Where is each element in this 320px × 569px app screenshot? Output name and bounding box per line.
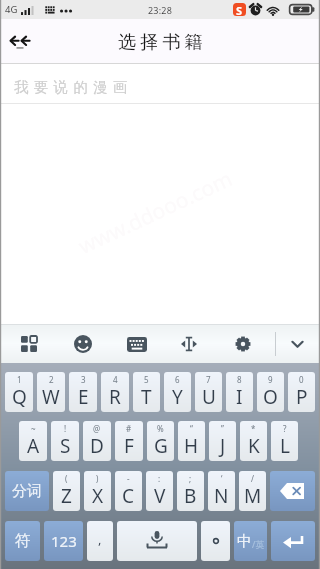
staticText: U xyxy=(202,384,216,410)
button[interactable]: 0 xyxy=(288,372,315,412)
button[interactable]: , xyxy=(87,521,113,561)
staticText: S xyxy=(60,433,71,459)
staticText: V xyxy=(154,483,166,509)
button[interactable]: 6 xyxy=(164,372,191,412)
staticText: ( xyxy=(65,473,68,484)
staticText: L xyxy=(280,433,290,459)
staticText: 8 xyxy=(237,374,242,385)
staticText: C xyxy=(122,483,135,509)
button[interactable]: 符 xyxy=(5,521,40,561)
staticText: 6 xyxy=(175,374,180,385)
staticText: ! xyxy=(64,423,67,434)
staticText: F xyxy=(124,433,134,459)
staticText: ~ xyxy=(31,423,36,434)
button[interactable]: / xyxy=(239,471,266,511)
button[interactable]: % xyxy=(147,421,174,461)
staticText: 1 xyxy=(17,374,22,385)
button[interactable]: ‘ xyxy=(208,471,235,511)
button[interactable]: ; xyxy=(177,471,204,511)
staticText: , xyxy=(98,530,102,548)
staticText: A xyxy=(27,433,40,459)
button[interactable]: - xyxy=(115,471,142,511)
staticText: S xyxy=(236,3,243,16)
staticText: I xyxy=(236,384,243,410)
staticText: / xyxy=(251,473,254,484)
staticText: G xyxy=(154,433,168,459)
button[interactable]: Space xyxy=(117,521,197,561)
staticText: * xyxy=(251,423,256,434)
button[interactable]: 8 xyxy=(226,372,253,412)
staticText: 2 xyxy=(49,374,54,385)
button[interactable]: 4 xyxy=(101,372,129,412)
staticText: ; xyxy=(189,473,192,484)
staticText: 分词 xyxy=(12,482,42,501)
button[interactable]: Settings xyxy=(229,330,257,358)
staticText: 23:28 xyxy=(148,4,173,16)
button[interactable]: Keyboard layouts xyxy=(15,330,43,358)
staticText: 9 xyxy=(268,374,273,385)
staticText: ‘ xyxy=(221,473,223,484)
staticText: W xyxy=(42,384,60,410)
button[interactable]: ) xyxy=(84,471,111,511)
staticText: H xyxy=(184,433,199,459)
staticText: ? xyxy=(283,423,287,434)
button[interactable]: ? xyxy=(271,421,298,461)
staticText: Q xyxy=(12,384,27,410)
staticText: D xyxy=(90,433,104,459)
staticText: P xyxy=(296,384,308,410)
button[interactable]: * xyxy=(240,421,267,461)
staticText: 4 xyxy=(113,374,118,385)
button[interactable]: Emoji xyxy=(69,330,97,358)
button[interactable]: ( xyxy=(53,471,80,511)
staticText: ) xyxy=(96,473,99,484)
button[interactable]: ” xyxy=(209,421,236,461)
staticText: T xyxy=(141,384,152,410)
button[interactable]: Hide keyboard xyxy=(283,330,311,358)
button[interactable]: ~ xyxy=(19,421,47,461)
button[interactable]: Move cursor xyxy=(175,330,203,358)
staticText: B xyxy=(184,483,197,509)
button[interactable]: # xyxy=(115,421,143,461)
button[interactable]: 123 xyxy=(44,521,83,561)
button[interactable]: 5 xyxy=(133,372,160,412)
button[interactable]: 2 xyxy=(37,372,65,412)
button[interactable]: 9 xyxy=(257,372,284,412)
staticText: 7 xyxy=(206,374,211,385)
button[interactable]: : xyxy=(146,471,173,511)
staticText: M xyxy=(244,483,262,509)
staticText: /英 xyxy=(252,538,265,550)
staticText: J xyxy=(220,433,226,459)
button[interactable]: 3 xyxy=(69,372,97,412)
staticText: O xyxy=(263,384,278,410)
staticText: K xyxy=(248,433,260,459)
staticText: : xyxy=(158,473,161,484)
staticText: ” xyxy=(221,423,224,434)
button[interactable]: Backspace xyxy=(270,471,315,511)
staticText: 选择书籍 xyxy=(118,31,207,54)
button[interactable]: 中 xyxy=(234,521,267,561)
button[interactable]: 分词 xyxy=(5,471,49,511)
staticText: % xyxy=(157,423,164,434)
button[interactable]: Back xyxy=(2,22,42,62)
staticText: E xyxy=(78,384,89,410)
button[interactable]: 7 xyxy=(195,372,222,412)
staticText: X xyxy=(92,483,104,509)
staticText: @ xyxy=(93,423,101,434)
button[interactable]: Period xyxy=(201,521,230,561)
staticText: N xyxy=(214,483,229,509)
staticText: - xyxy=(127,473,130,484)
staticText: R xyxy=(109,384,121,410)
button[interactable]: @ xyxy=(83,421,111,461)
staticText: 123 xyxy=(51,531,77,551)
button[interactable]: ! xyxy=(51,421,79,461)
button[interactable]: Enter xyxy=(271,521,315,561)
button[interactable]: “ xyxy=(178,421,205,461)
button[interactable]: 1 xyxy=(5,372,33,412)
staticText: 我要说的漫画 xyxy=(14,78,133,96)
staticText: 4G xyxy=(5,3,18,16)
button[interactable]: Switch keyboard xyxy=(123,330,151,358)
staticText: 3 xyxy=(81,374,86,385)
button[interactable]: 我要说的漫画 xyxy=(0,64,320,103)
staticText: “ xyxy=(190,423,193,434)
